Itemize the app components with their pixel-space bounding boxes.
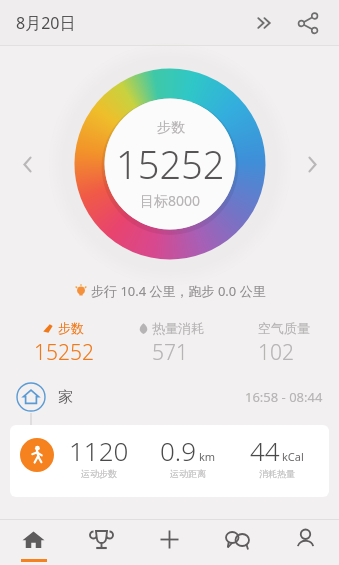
staticText: 消耗热量 xyxy=(259,468,295,479)
staticText: 运动距离 xyxy=(170,468,206,479)
button[interactable]: 热量消耗 xyxy=(117,318,223,369)
button[interactable]: Add xyxy=(135,519,203,565)
staticText: 步数 xyxy=(58,320,84,336)
button[interactable]: Profile xyxy=(271,519,339,565)
staticText: 0.9 xyxy=(160,433,197,468)
button[interactable]: Previous day xyxy=(10,147,44,181)
staticText: 运动步数 xyxy=(81,468,117,479)
staticText: 步行 10.4 公里，跑步 0.0 公里 xyxy=(91,282,266,300)
staticText: kCal xyxy=(282,449,304,464)
staticText: 1120 xyxy=(69,433,129,468)
button[interactable]: Home xyxy=(0,519,67,565)
staticText: 8月20日 xyxy=(16,12,76,34)
button[interactable]: Next day xyxy=(295,147,329,181)
button[interactable]: Achievements xyxy=(67,519,135,565)
staticText: 家 xyxy=(58,388,73,407)
staticText: 步数 xyxy=(157,119,185,137)
staticText: 102 xyxy=(258,338,294,367)
button[interactable]: Messages xyxy=(203,519,271,565)
button[interactable]: 1120 xyxy=(10,425,329,497)
button[interactable]: Next xyxy=(243,2,285,44)
staticText: 空气质量 xyxy=(258,320,310,336)
staticText: 15252 xyxy=(34,338,94,367)
staticText: 16:58 - 08:44 xyxy=(245,388,323,406)
staticText: km xyxy=(199,449,216,464)
button[interactable]: 空气质量 xyxy=(223,318,329,369)
staticText: 热量消耗 xyxy=(152,320,204,336)
staticText: 571 xyxy=(152,338,188,367)
staticText: 44 xyxy=(250,433,280,468)
staticText: 15252 xyxy=(116,138,225,190)
button[interactable]: 步数 xyxy=(10,318,117,369)
button[interactable]: Share xyxy=(287,2,329,44)
staticText: 目标8000 xyxy=(140,191,201,210)
button[interactable]: 家 xyxy=(16,382,323,412)
